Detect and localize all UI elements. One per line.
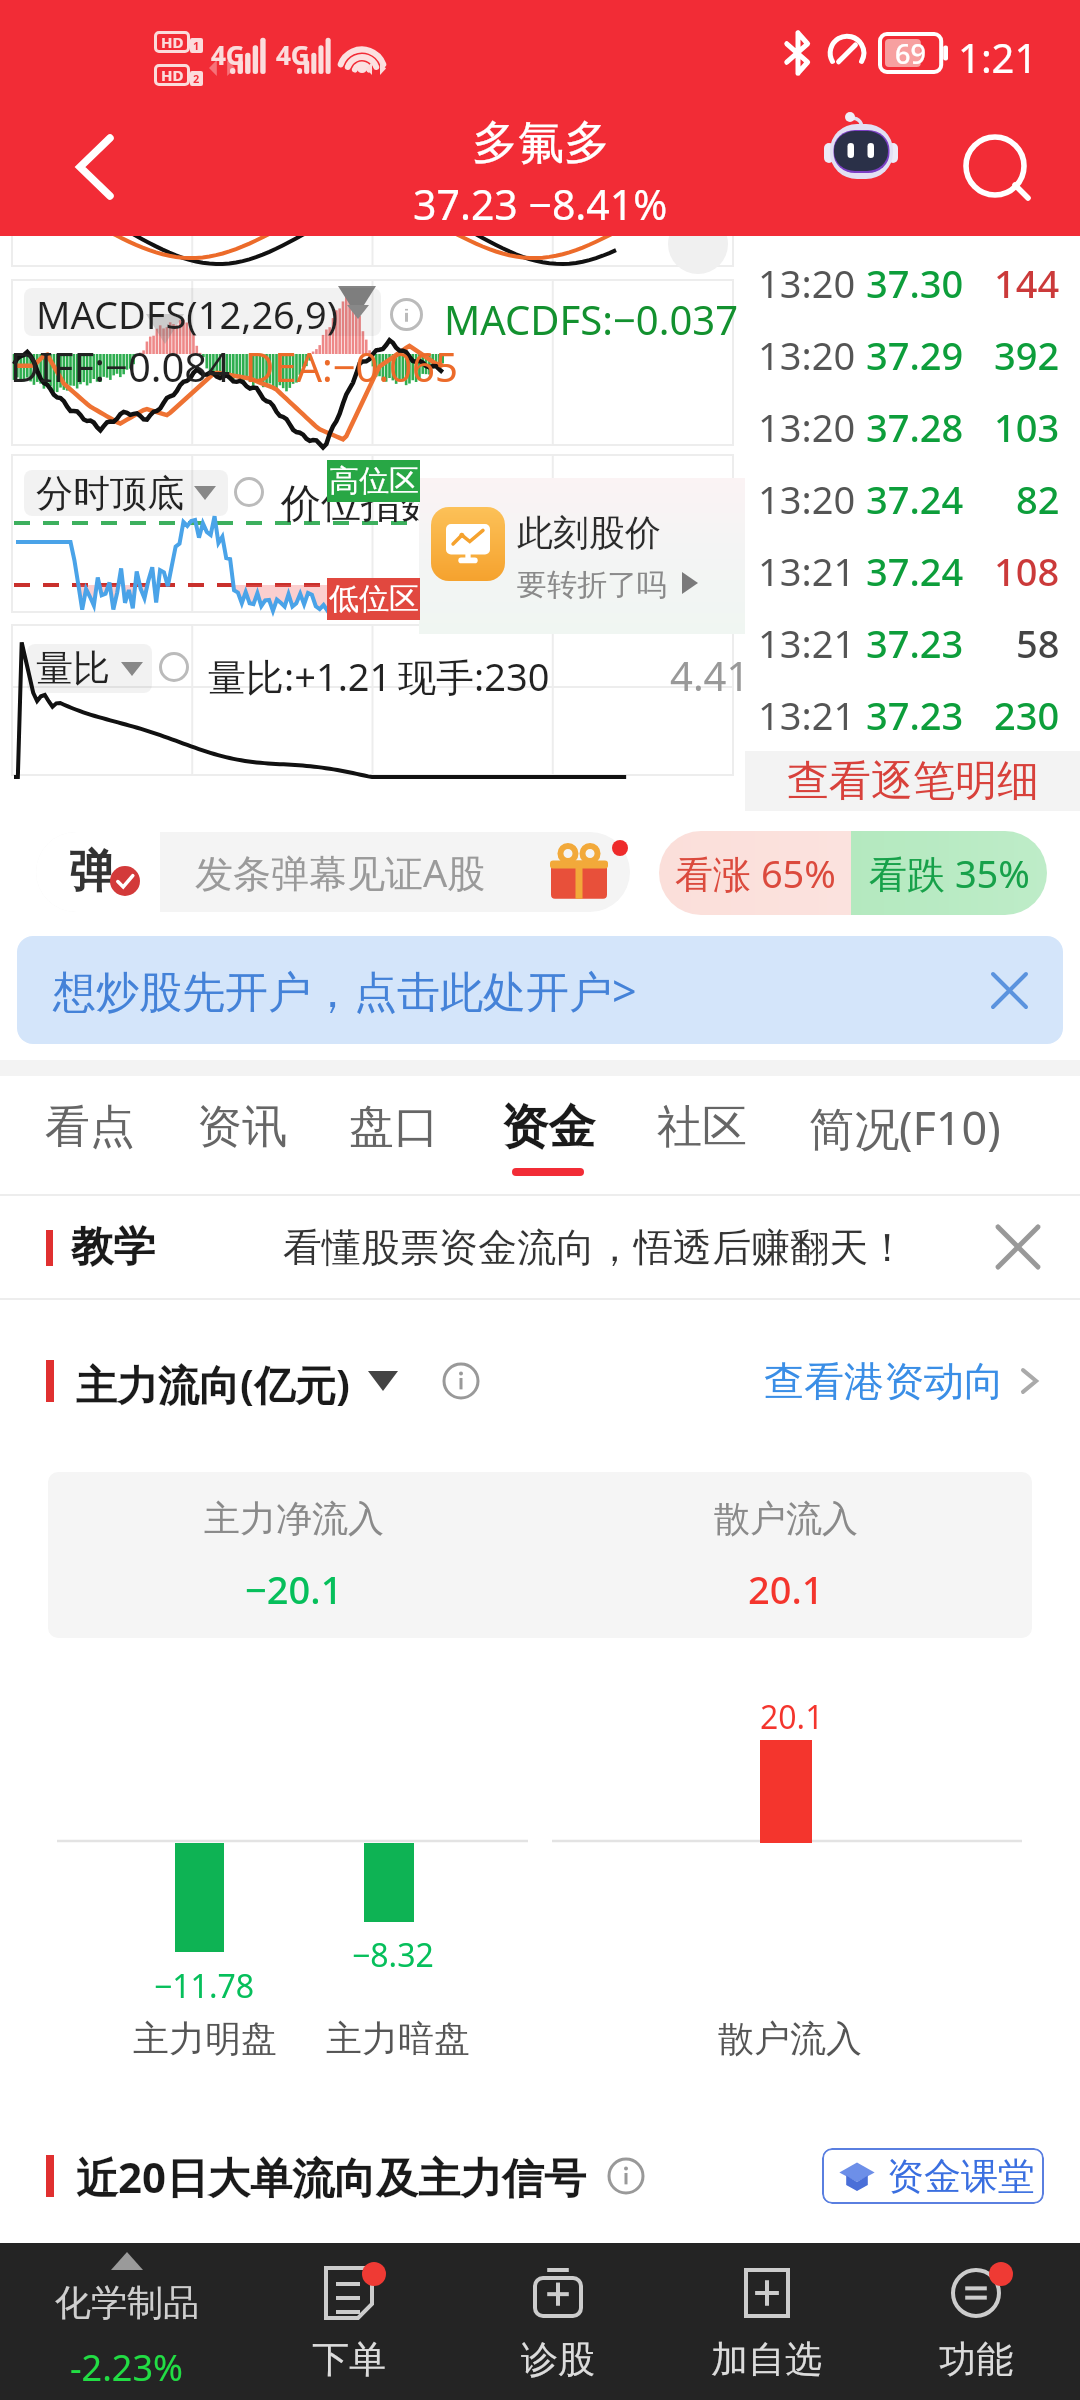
button[interactable]: 分时顶底 <box>24 470 228 516</box>
staticText: 37.24 <box>866 473 964 525</box>
staticText: 资金课堂 <box>887 2153 1035 2200</box>
staticText: 1:21 <box>958 30 1038 84</box>
staticText: 多氟多 <box>472 114 610 172</box>
button[interactable]: 资金课堂 <box>822 2148 1044 2204</box>
button[interactable]: 功能 <box>871 2243 1080 2400</box>
staticText: 13:20 <box>758 257 856 309</box>
staticText: 37.23 <box>866 617 964 669</box>
staticText: 低位区 <box>329 580 419 618</box>
staticText: 化学制品 <box>55 2280 199 2325</box>
button[interactable]: 加自选 <box>662 2243 871 2400</box>
staticText: −8.32 <box>352 1933 434 1977</box>
button[interactable]: 13:21 <box>758 535 1060 607</box>
staticText: 社区 <box>657 1099 747 1156</box>
button[interactable]: 社区 <box>626 1076 778 1194</box>
button[interactable]: Info <box>607 2157 645 2195</box>
staticText: MACDFS:−0.037 <box>444 292 739 346</box>
staticText: 108 <box>994 545 1060 597</box>
button[interactable]: 查看港资动向 <box>764 1356 1044 1406</box>
staticText: 想炒股先开户，点击此处开户> <box>53 961 637 1020</box>
button[interactable]: AI assistant <box>805 100 917 236</box>
staticText: 392 <box>994 329 1060 381</box>
staticText: DIFF:−0.084 <box>10 339 231 393</box>
button[interactable]: 13:20 <box>758 391 1060 463</box>
staticText: 高位区 <box>329 462 419 500</box>
button[interactable]: 资金 <box>470 1076 626 1194</box>
button[interactable]: 量比 <box>27 644 152 693</box>
staticText: 近20日大单流向及主力信号 <box>76 2148 587 2204</box>
staticText: 查看逐笔明细 <box>787 755 1039 808</box>
staticText: 13:21 <box>758 617 856 669</box>
staticText: 下单 <box>312 2336 386 2383</box>
staticText: 58 <box>1016 617 1060 669</box>
staticText: 82 <box>1016 473 1060 525</box>
staticText: 主力净流入 <box>204 1496 384 1541</box>
staticText: 看懂股票资金流向，悟透后赚翻天！ <box>283 1223 907 1272</box>
staticText: 主力暗盘 <box>326 2016 470 2061</box>
button[interactable]: 13:20 <box>758 319 1060 391</box>
staticText: 1 <box>193 38 200 53</box>
staticText: 主力流向(亿元) <box>76 1356 350 1406</box>
button[interactable]: 13:21 <box>758 607 1060 679</box>
button[interactable]: 此刻股价 <box>419 478 745 634</box>
button[interactable]: 简况(F10) <box>778 1076 1032 1194</box>
button[interactable]: 化学制品 <box>0 2243 245 2400</box>
button[interactable]: Close tip <box>986 1215 1050 1279</box>
staticText: 主力明盘 <box>133 2016 277 2061</box>
staticText: 分时顶底 <box>36 470 184 516</box>
staticText: −20.1 <box>245 1563 343 1615</box>
staticText: 教学 <box>71 1221 155 1274</box>
staticText: 2 <box>193 71 200 86</box>
staticText: HD <box>161 65 184 85</box>
button[interactable]: 弹 <box>36 832 630 912</box>
button[interactable]: Info <box>442 1362 480 1400</box>
staticText: 37.24 <box>866 545 964 597</box>
button[interactable]: 盘口 <box>318 1076 470 1194</box>
staticText: 诊股 <box>521 2336 595 2383</box>
button[interactable]: 想炒股先开户，点击此处开户> <box>17 936 1063 1044</box>
button[interactable]: 13:20 <box>758 247 1060 319</box>
staticText: 加自选 <box>711 2336 822 2383</box>
button[interactable]: 诊股 <box>453 2243 662 2400</box>
staticText: -2.23% <box>70 2343 183 2392</box>
staticText: 资金 <box>501 1098 595 1157</box>
button[interactable]: MACDFS(12,26,9) <box>24 288 381 336</box>
button[interactable]: 下单 <box>245 2243 453 2400</box>
button[interactable]: Switch <box>368 1371 398 1391</box>
button[interactable]: 看涨 65% <box>659 831 851 915</box>
staticText: 此刻股价 <box>517 510 661 555</box>
button[interactable]: 看点 <box>14 1076 166 1194</box>
staticText: 37.30 <box>866 257 964 309</box>
staticText: 看跌 35% <box>869 847 1030 899</box>
button[interactable]: Close banner <box>979 960 1039 1020</box>
staticText: 弹 <box>69 843 115 901</box>
staticText: MACDFS(12,26,9) <box>36 288 339 336</box>
staticText: 4G <box>211 37 245 72</box>
staticText: 37.29 <box>866 329 964 381</box>
staticText: 看点 <box>45 1099 135 1156</box>
staticText: 13:21 <box>758 545 856 597</box>
button[interactable]: Search <box>940 100 1052 236</box>
staticText: 看涨 65% <box>675 847 836 899</box>
staticText: 发条弹幕见证A股 <box>195 846 486 898</box>
staticText: 4.41 <box>670 648 745 702</box>
button[interactable]: 13:20 <box>758 463 1060 535</box>
staticText: 13:20 <box>758 401 856 453</box>
staticText: 144 <box>994 257 1060 309</box>
button[interactable]: Back <box>0 100 190 236</box>
button[interactable]: 看跌 35% <box>851 831 1047 915</box>
staticText: 查看港资动向 <box>764 1356 1004 1406</box>
button[interactable]: 查看逐笔明细 <box>745 751 1080 811</box>
button[interactable]: 资讯 <box>166 1076 318 1194</box>
button[interactable]: 教学 <box>0 1194 1080 1300</box>
staticText: −11.78 <box>154 1964 255 2008</box>
staticText: 230 <box>994 689 1060 741</box>
button[interactable]: 13:21 <box>758 679 1060 751</box>
staticText: 20.1 <box>760 1695 824 1739</box>
staticText: 37.23 <box>866 689 964 741</box>
staticText: 散户流入 <box>718 2016 862 2061</box>
staticText: 现手:230 <box>398 650 550 702</box>
staticText: 13:20 <box>758 329 856 381</box>
staticText: DEA:−0.065 <box>245 339 458 393</box>
staticText: 功能 <box>939 2336 1013 2383</box>
